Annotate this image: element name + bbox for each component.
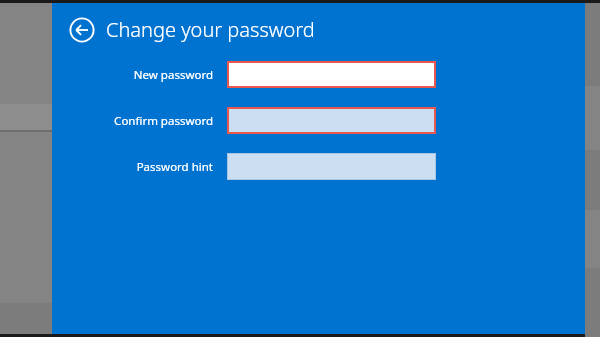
staticText: Change your password bbox=[106, 16, 315, 43]
button[interactable] bbox=[227, 107, 436, 134]
button[interactable] bbox=[227, 61, 436, 88]
staticText: Password hint bbox=[136, 159, 213, 175]
button[interactable]: Back bbox=[69, 17, 95, 43]
staticText: Confirm password bbox=[114, 113, 213, 129]
staticText: New password bbox=[133, 67, 213, 83]
button[interactable] bbox=[227, 153, 436, 180]
